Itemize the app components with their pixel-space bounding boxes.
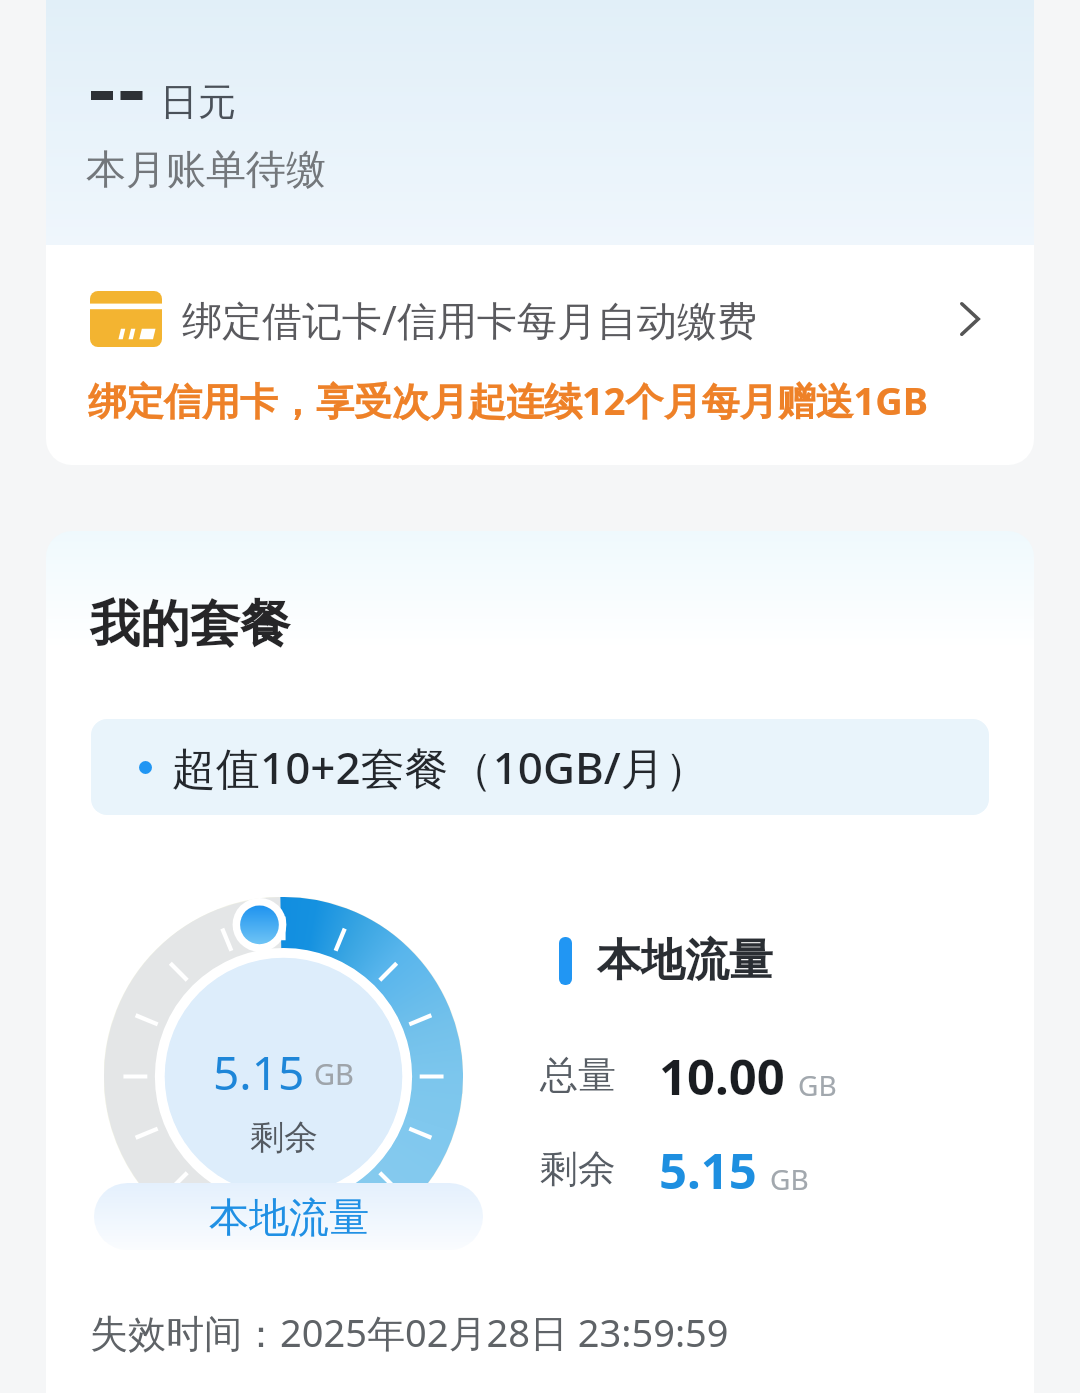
staticText: 日元 <box>160 78 236 126</box>
staticText: 失效时间：2025年02月28日 23:59:59 <box>90 1306 729 1358</box>
button[interactable]: 本地流量剩余 5.15 GB <box>104 897 463 1256</box>
staticText: 超值10+2套餐（10GB/月） <box>172 737 709 797</box>
staticText: 5.15 <box>659 1137 757 1204</box>
staticText: GB <box>798 1066 837 1104</box>
button[interactable]: 查看详情 <box>944 293 996 345</box>
staticText: 我的套餐 <box>90 593 290 656</box>
staticText: 本地流量 <box>597 933 773 988</box>
staticText: 绑定借记卡/信用卡每月自动缴费 <box>182 292 944 347</box>
button[interactable]: 本地流量 <box>94 1183 483 1250</box>
staticText: 10.00 <box>659 1043 785 1110</box>
staticText: 总量 <box>540 1051 616 1099</box>
staticText: 绑定信用卡，享受次月起连续12个月每月赠送1GB <box>88 374 928 426</box>
staticText: 剩余 <box>250 1116 318 1159</box>
staticText: GB <box>314 1054 354 1093</box>
staticText: 5.15 <box>213 1041 305 1104</box>
button[interactable]: 超值10+2套餐（10GB/月） <box>91 719 989 815</box>
staticText: 本地流量 <box>209 1192 369 1242</box>
staticText: 剩余 <box>540 1145 616 1193</box>
button[interactable]: 绑定借记卡/信用卡每月自动缴费 <box>46 270 1034 368</box>
staticText: GB <box>770 1160 809 1198</box>
staticText: 本月账单待缴 <box>86 144 326 194</box>
